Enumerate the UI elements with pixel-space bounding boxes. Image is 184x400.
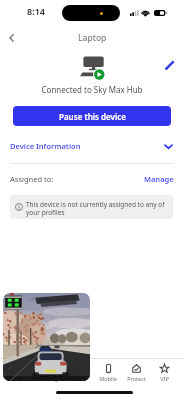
button[interactable]: Protect [122, 364, 150, 382]
staticText: Laptop [78, 32, 107, 44]
button[interactable]: Back [2, 28, 22, 48]
button[interactable]: Home [10, 364, 38, 382]
button[interactable]: Device Information [10, 136, 174, 156]
button[interactable]: VIP [150, 364, 178, 382]
button[interactable]: Usage [38, 364, 66, 382]
staticText: Home [16, 375, 32, 382]
staticText: Manage [144, 174, 174, 184]
button[interactable]: Picture in picture video [3, 293, 90, 381]
staticText: Assigned to: [10, 174, 54, 184]
staticText: VIP [160, 375, 169, 382]
staticText: Mobile [99, 375, 117, 382]
staticText: Connected to Sky Max Hub [0, 84, 184, 95]
staticText: Protect [127, 375, 146, 382]
button[interactable]: Edit device name [160, 56, 178, 74]
staticText: Usage [44, 375, 61, 382]
staticText: WiFi [75, 375, 86, 382]
staticText: 8:14 [27, 5, 45, 17]
button[interactable]: Mobile [94, 364, 122, 382]
staticText: Device Information [10, 141, 81, 151]
button[interactable]: Pause this device [13, 106, 171, 126]
staticText: Pause this device [59, 111, 126, 122]
button[interactable]: Manage [144, 174, 174, 184]
button[interactable]: WiFi [66, 364, 94, 382]
staticText: This device is not currently assigned to… [26, 200, 165, 217]
